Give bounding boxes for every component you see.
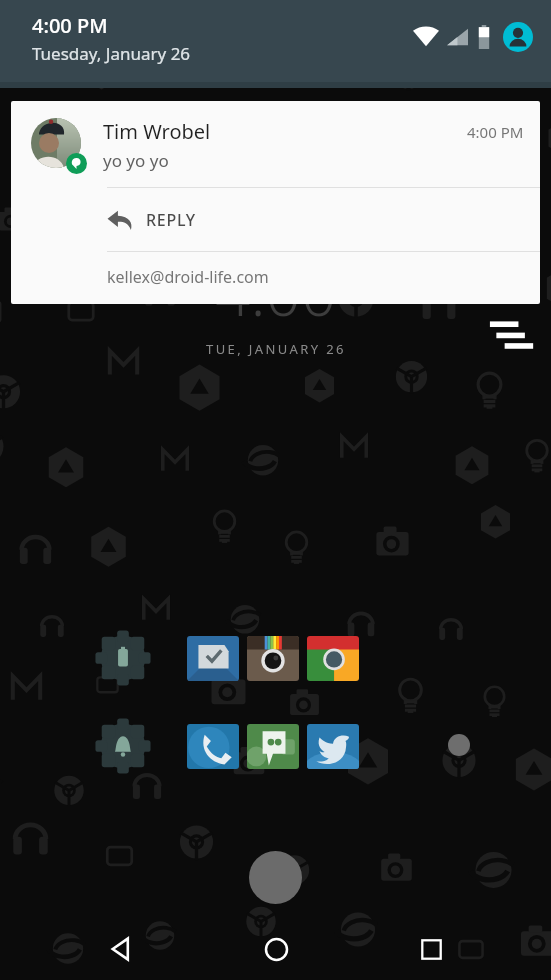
button[interactable]: Home	[256, 929, 296, 969]
button[interactable]: User profile	[503, 22, 533, 52]
staticText: 4:00 PM	[467, 122, 524, 142]
staticText: 4:00 PM	[32, 12, 108, 39]
staticText: Tim Wrobel	[103, 118, 467, 145]
button[interactable]: All apps	[249, 851, 302, 904]
button[interactable]: Recent apps	[411, 929, 451, 969]
button[interactable]: Back	[100, 929, 140, 969]
staticText: REPLY	[146, 209, 196, 231]
staticText: kellex@droid-life.com	[107, 266, 269, 288]
button[interactable]: Notification settings	[95, 718, 151, 774]
button[interactable]: Instagram	[247, 636, 299, 681]
staticText: Tuesday, January 26	[32, 42, 191, 65]
button[interactable]: Phone	[187, 724, 239, 769]
button[interactable]: Battery settings	[95, 630, 151, 686]
button[interactable]: REPLY	[107, 188, 540, 251]
button[interactable]: Chrome	[307, 636, 359, 681]
staticText: TUE, JANUARY 26	[206, 340, 346, 358]
button[interactable]: Inbox	[187, 636, 239, 681]
staticText: 4:00	[215, 250, 337, 334]
staticText: yo yo yo	[103, 149, 169, 172]
button[interactable]: Hangouts	[247, 724, 299, 769]
button[interactable]: Tim Wrobel	[11, 101, 540, 304]
button[interactable]: Weather	[489, 318, 535, 352]
button[interactable]: Twitter	[307, 724, 359, 769]
